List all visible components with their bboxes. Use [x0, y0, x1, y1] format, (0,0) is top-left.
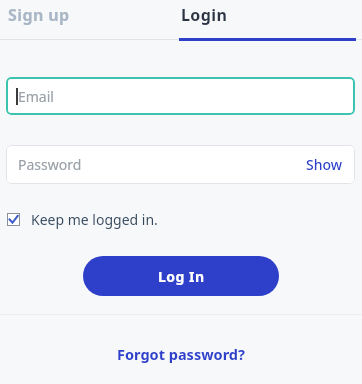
staticText: Email — [18, 87, 54, 106]
button[interactable]: Password — [6, 145, 355, 184]
button[interactable]: Forgot password? — [117, 344, 245, 364]
staticText: Login — [181, 4, 228, 26]
staticText: Log In — [158, 267, 205, 286]
staticText: Keep me logged in. — [31, 210, 158, 229]
button[interactable]: Log In — [83, 256, 279, 296]
button[interactable]: Login — [181, 0, 362, 38]
button[interactable]: Email — [6, 77, 355, 115]
button[interactable]: Keep me logged in. — [7, 210, 158, 229]
button[interactable]: Show — [306, 155, 343, 174]
button[interactable]: Sign up — [0, 0, 181, 38]
staticText: Password — [18, 155, 82, 174]
staticText: Sign up — [8, 4, 70, 26]
